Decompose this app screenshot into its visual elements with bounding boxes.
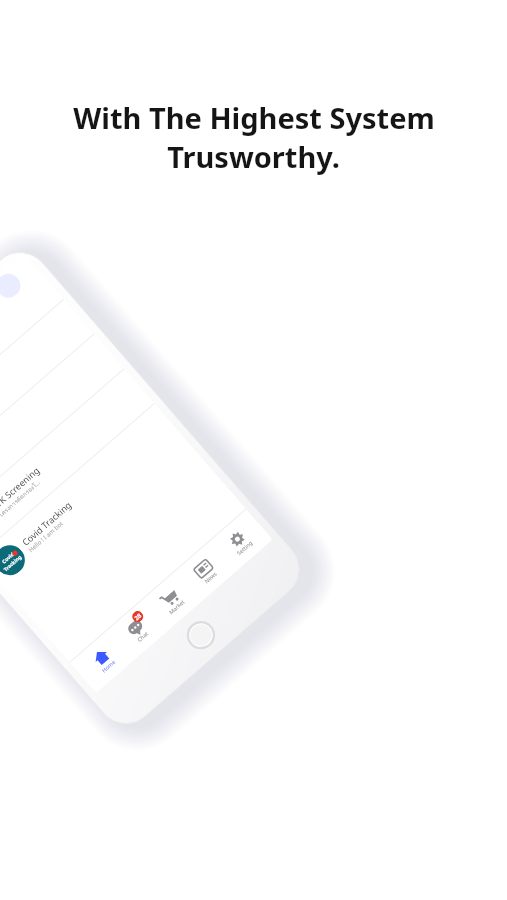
staticText: Covid Tracking [0,548,23,573]
staticText: Chat [135,630,149,643]
button[interactable]: Covid Tracking [0,403,184,591]
staticText: Setting [235,539,254,556]
staticText: โครงการคัดกรองโ… [0,478,43,520]
button[interactable] [0,299,94,487]
staticText: ATK Screening [0,464,41,512]
button[interactable]: Market [145,574,198,628]
staticText: 28 [133,612,143,622]
staticText: Hello ! I am bot [27,520,65,554]
staticText: Market [167,598,186,615]
button[interactable]: News [179,545,232,599]
button[interactable]: Setting [213,515,266,569]
button[interactable]: 28 [111,604,164,658]
staticText: Trusworthy. [167,137,340,176]
button[interactable] [0,262,34,310]
staticText: Home [100,658,117,674]
button[interactable]: ATK Screening [0,368,154,556]
staticText: News [203,569,219,585]
staticText: With The Highest System [73,98,435,137]
button[interactable]: Paperle… [0,333,124,522]
staticText: Covid Tracking [19,498,74,548]
button[interactable]: Home [77,633,130,687]
